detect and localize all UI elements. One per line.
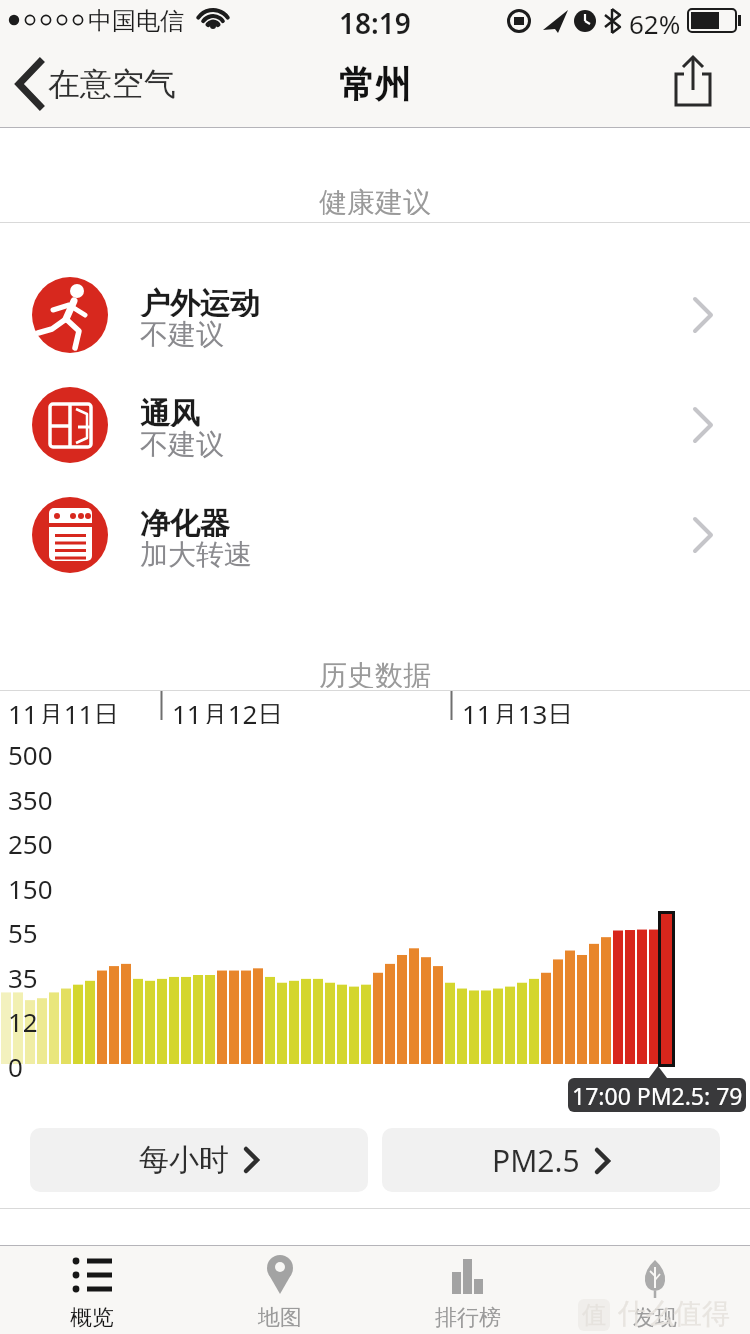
button[interactable] [658,40,750,128]
staticText: 值 [582,1300,606,1330]
staticText: 62% [629,6,681,34]
staticText: 加大转速 [140,537,252,569]
staticText: 户外运动 [140,285,260,317]
staticText: 不建议 [140,427,224,459]
button[interactable] [0,40,210,128]
button[interactable]: 每小时 [30,1128,368,1192]
button[interactable] [374,1245,561,1334]
staticText: PM2.5 [492,1140,580,1181]
button[interactable] [0,480,750,590]
staticText: 通风 [140,395,200,427]
staticText: 18:19 [339,4,411,36]
staticText: 11月13日 [462,696,574,724]
staticText: 每小时 [139,1141,229,1179]
staticText: 历史数据 [319,658,431,688]
staticText: 中国电信 [88,6,184,34]
button[interactable] [0,1245,187,1334]
staticText: 150 [8,871,53,901]
staticText: 0 [8,1049,23,1079]
staticText: 排行榜 [435,1304,501,1332]
staticText: 什么值得买 [618,1296,750,1334]
staticText: 12 [8,1004,38,1034]
staticText: 11月12日 [172,696,284,724]
staticText: 11月11日 [8,696,120,724]
button[interactable] [561,1245,748,1334]
staticText: 概览 [70,1304,114,1332]
staticText: 35 [8,960,38,990]
staticText: 350 [8,782,53,812]
staticText: 常州 [339,62,411,107]
staticText: 健康建议 [319,185,431,215]
staticText: 在意空气 [48,64,176,104]
staticText: 55 [8,915,38,945]
staticText: 17:00 PM2.5: 79 [572,1080,743,1111]
button[interactable]: PM2.5 [382,1128,720,1192]
staticText: 500 [8,737,53,767]
staticText: 净化器 [140,505,230,537]
staticText: 地图 [258,1304,302,1332]
staticText: 250 [8,826,53,856]
button[interactable] [0,260,750,370]
button[interactable] [187,1245,374,1334]
staticText: 发现 [633,1304,677,1332]
button[interactable] [0,370,750,480]
staticText: 不建议 [140,317,224,349]
